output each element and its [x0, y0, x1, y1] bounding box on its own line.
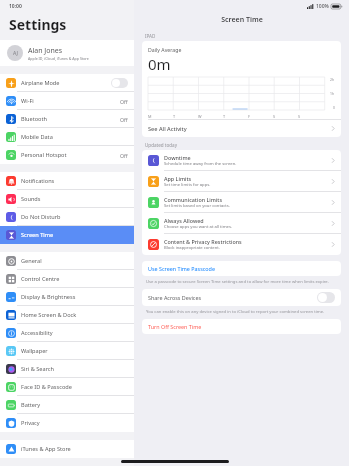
- button[interactable]: Notifications: [0, 172, 134, 190]
- button[interactable]: Wi-Fi: [0, 92, 134, 110]
- staticText: Settings: [9, 15, 67, 34]
- button[interactable]: Control Centre: [0, 270, 134, 288]
- button[interactable]: Home Screen & Dock: [0, 306, 134, 324]
- staticText: 10:00: [9, 3, 22, 10]
- staticText: Always Allowed: [164, 217, 204, 224]
- staticText: S: [298, 114, 301, 119]
- staticText: Content & Privacy Restrictions: [164, 238, 242, 245]
- staticText: Face ID & Passcode: [21, 383, 72, 391]
- button[interactable]: Battery: [0, 396, 134, 414]
- staticText: Use a passcode to secure Screen Time set…: [146, 279, 329, 285]
- staticText: Set limits based on your contacts.: [164, 203, 230, 209]
- button[interactable]: Share Across Devices: [142, 289, 341, 306]
- staticText: T: [173, 114, 176, 119]
- staticText: Daily Average: [148, 46, 182, 53]
- button[interactable]: Privacy: [0, 414, 134, 432]
- button[interactable]: AJ: [0, 40, 134, 66]
- staticText: Alan Jones: [28, 46, 63, 56]
- staticText: Accessibility: [21, 329, 53, 337]
- button[interactable]: Downtime: [142, 150, 341, 171]
- staticText: Battery: [21, 401, 41, 409]
- button[interactable]: Face ID & Passcode: [0, 378, 134, 396]
- staticText: 0m: [148, 54, 171, 74]
- staticText: Off: [120, 152, 128, 159]
- staticText: 1h: [330, 91, 335, 96]
- button[interactable]: Communication Limits: [142, 192, 341, 213]
- button[interactable]: App Limits: [142, 171, 341, 192]
- staticText: Turn Off Screen Time: [148, 323, 202, 330]
- button[interactable]: Mobile Data: [0, 128, 134, 146]
- staticText: M: [148, 114, 152, 119]
- button[interactable]: Bluetooth: [0, 110, 134, 128]
- button[interactable]: Personal Hotspot: [0, 146, 134, 164]
- staticText: General: [21, 257, 42, 265]
- staticText: IPAD: [145, 33, 156, 39]
- staticText: See All Activity: [148, 125, 187, 133]
- staticText: Choose apps you want at all times.: [164, 224, 233, 230]
- staticText: Airplane Mode: [21, 79, 60, 87]
- staticText: Do Not Disturb: [21, 213, 61, 221]
- staticText: W: [198, 114, 202, 119]
- staticText: iTunes & App Store: [21, 445, 71, 453]
- button[interactable]: See All Activity: [142, 120, 341, 137]
- staticText: Notifications: [21, 177, 55, 185]
- button[interactable]: iTunes & App Store: [0, 440, 134, 458]
- staticText: Downtime: [164, 154, 191, 161]
- other: Share Across Devices toggle: [317, 292, 335, 303]
- button[interactable]: Turn Off Screen Time: [142, 319, 341, 334]
- staticText: Off: [120, 116, 128, 123]
- staticText: Off: [120, 98, 128, 105]
- staticText: Updated today: [145, 142, 178, 148]
- staticText: 2h: [330, 77, 335, 82]
- staticText: F: [248, 114, 250, 119]
- button[interactable]: Screen Time: [0, 226, 134, 244]
- button[interactable]: Accessibility: [0, 324, 134, 342]
- staticText: Screen Time: [221, 15, 263, 25]
- staticText: Personal Hotspot: [21, 151, 67, 159]
- staticText: Wallpaper: [21, 347, 48, 355]
- button[interactable]: Airplane Mode toggle: [111, 78, 128, 88]
- staticText: 0: [333, 105, 335, 110]
- staticText: Screen Time: [21, 231, 54, 239]
- staticText: Home Screen & Dock: [21, 311, 77, 319]
- staticText: Wi-Fi: [21, 97, 34, 105]
- staticText: Privacy: [21, 419, 40, 427]
- staticText: Schedule time away from the screen.: [164, 161, 237, 167]
- staticText: Share Across Devices: [148, 294, 202, 301]
- button[interactable]: Wallpaper: [0, 342, 134, 360]
- staticText: Block inappropriate content.: [164, 245, 220, 251]
- button[interactable]: Airplane Mode: [0, 74, 134, 92]
- staticText: Use Screen Time Passcode: [148, 265, 215, 272]
- button[interactable]: Use Screen Time Passcode: [142, 261, 341, 276]
- staticText: Display & Brightness: [21, 293, 76, 301]
- button[interactable]: Display & Brightness: [0, 288, 134, 306]
- staticText: Apple ID, iCloud, iTunes & App Store: [28, 56, 89, 61]
- button[interactable]: Siri & Search: [0, 360, 134, 378]
- staticText: Control Centre: [21, 275, 60, 283]
- staticText: App Limits: [164, 175, 192, 182]
- staticText: Communication Limits: [164, 196, 223, 203]
- button[interactable]: Sounds: [0, 190, 134, 208]
- staticText: Sounds: [21, 195, 41, 203]
- button[interactable]: General: [0, 252, 134, 270]
- button[interactable]: Always Allowed: [142, 213, 341, 234]
- button[interactable]: Content & Privacy Restrictions: [142, 234, 341, 255]
- staticText: You can enable this on any device signed…: [146, 309, 325, 315]
- staticText: T: [223, 114, 226, 119]
- staticText: AJ: [13, 50, 18, 57]
- staticText: S: [273, 114, 276, 119]
- staticText: Mobile Data: [21, 133, 53, 141]
- staticText: Bluetooth: [21, 115, 47, 123]
- staticText: Set time limits for apps.: [164, 182, 211, 188]
- staticText: 100%: [316, 3, 329, 10]
- button[interactable]: Do Not Disturb: [0, 208, 134, 226]
- staticText: Siri & Search: [21, 365, 54, 373]
